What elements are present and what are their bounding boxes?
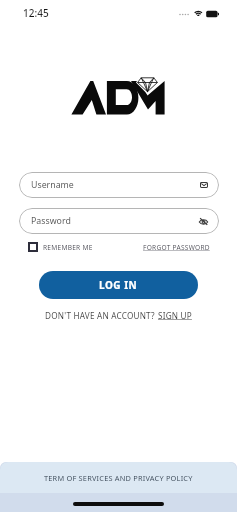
- button[interactable]: TERM OF SERVICES AND PRIVACY POLICY: [0, 462, 237, 493]
- other: Show password: [199, 218, 208, 225]
- staticText: 12:45: [23, 6, 49, 20]
- button[interactable]: Password: [19, 208, 219, 234]
- staticText: REMEMBER ME: [43, 243, 93, 252]
- button[interactable]: FORGOT PASSWORD: [143, 243, 210, 252]
- staticText: DON'T HAVE AN ACCOUNT?: [45, 310, 158, 321]
- button[interactable]: Username: [19, 172, 219, 198]
- button[interactable]: REMEMBER ME: [28, 242, 93, 252]
- staticText: TERM OF SERVICES AND PRIVACY POLICY: [44, 473, 193, 483]
- staticText: Username: [31, 179, 74, 191]
- button[interactable]: SIGN UP: [158, 310, 192, 321]
- button[interactable]: LOG IN: [39, 271, 198, 299]
- other: Email: [200, 182, 208, 188]
- staticText: Password: [31, 215, 71, 227]
- staticText: LOG IN: [99, 278, 138, 292]
